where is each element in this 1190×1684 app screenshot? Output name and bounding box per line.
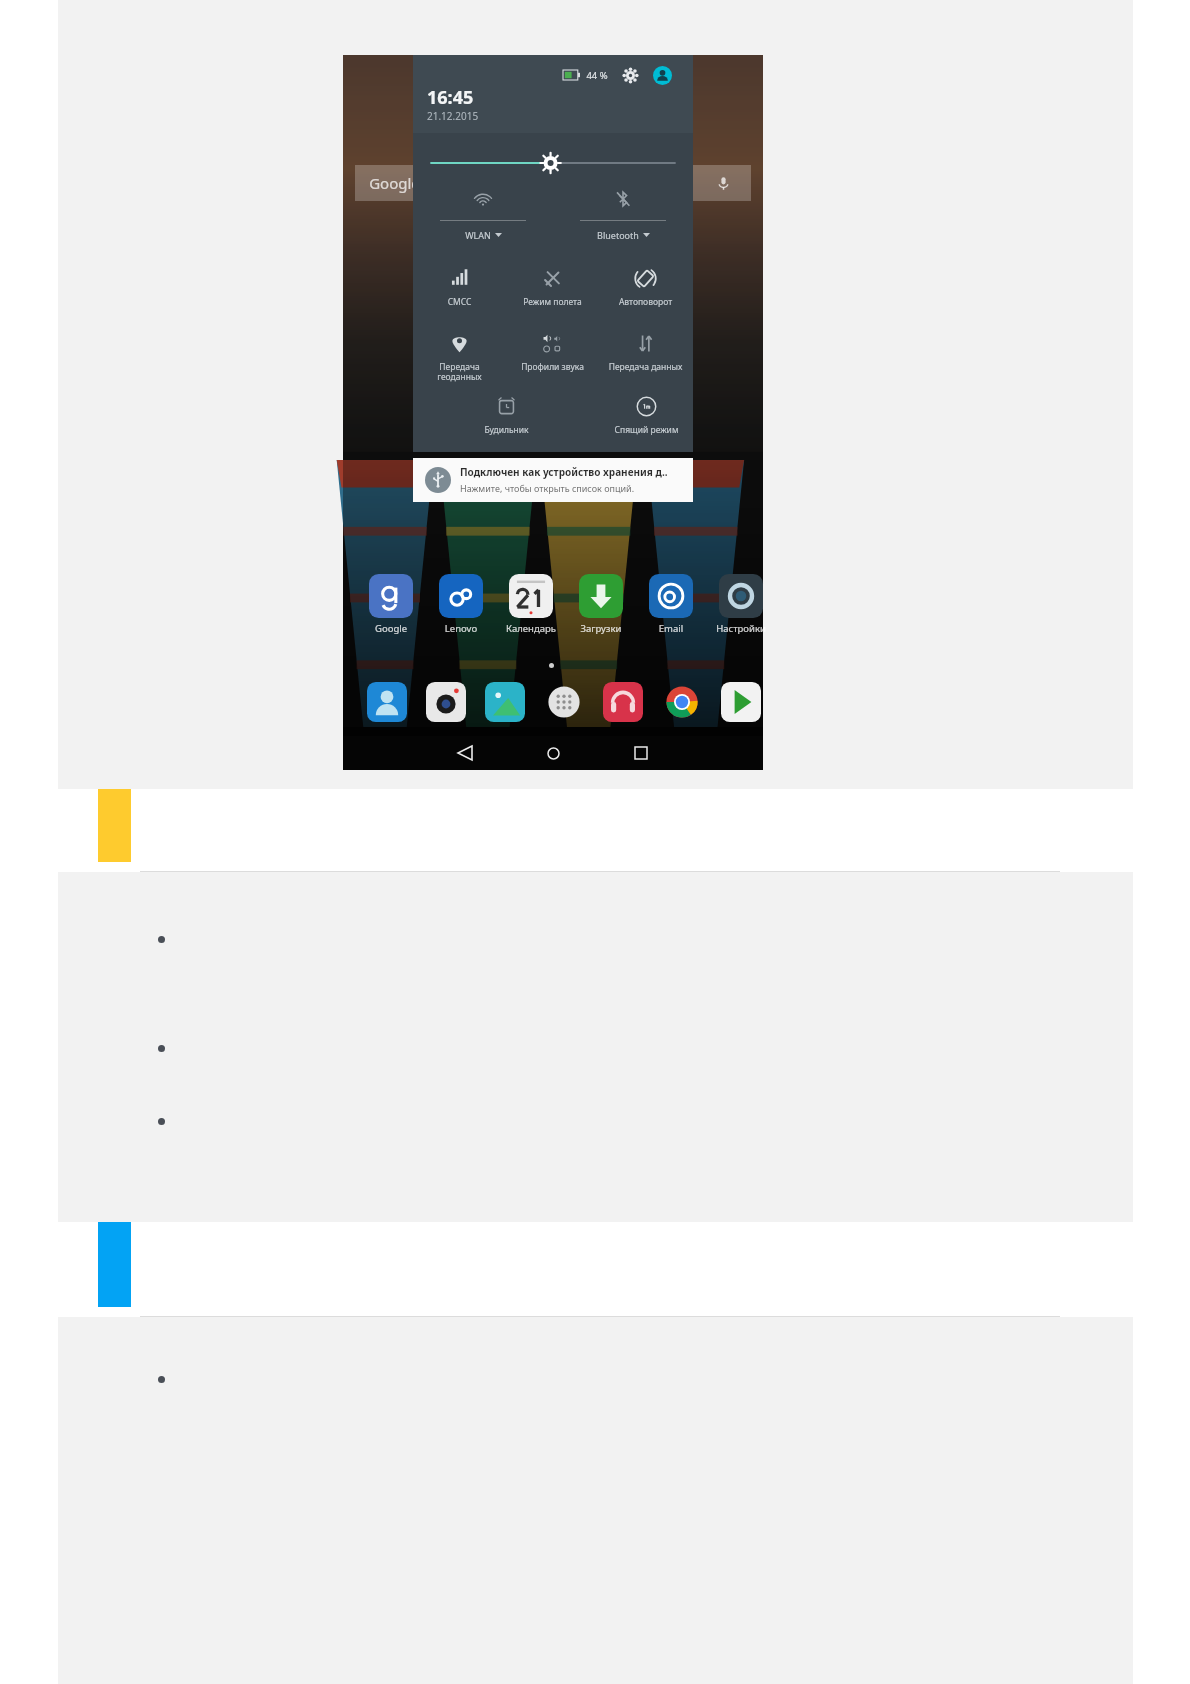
staticText: Передача геоданных <box>413 361 506 383</box>
button[interactable]: Back <box>435 736 495 770</box>
button[interactable]: Music <box>595 674 651 730</box>
button[interactable]: Home <box>523 736 583 770</box>
button[interactable]: Recents <box>611 736 671 770</box>
button[interactable]: Автоповорот <box>599 265 692 327</box>
staticText: Профили звука <box>506 361 599 373</box>
staticText: Календарь <box>496 622 566 635</box>
staticText: Google <box>369 173 420 193</box>
staticText: Режим полета <box>506 296 599 308</box>
button[interactable]: Передача геоданных <box>413 330 506 392</box>
button[interactable]: Contacts <box>359 674 415 730</box>
button[interactable]: Профили звука <box>506 330 599 392</box>
staticText: Подключен как устройство хранения д.. <box>460 465 668 479</box>
button[interactable]: Календарь <box>496 574 566 646</box>
button[interactable]: WLAN <box>413 183 553 245</box>
staticText: Нажмите, чтобы открыть список опций. <box>460 482 635 494</box>
button[interactable]: Будильник <box>460 393 553 449</box>
button[interactable]: Chrome <box>654 674 710 730</box>
staticText: 16:45 <box>427 85 474 110</box>
button[interactable]: Настройки <box>706 574 776 646</box>
staticText: Bluetooth <box>597 229 639 241</box>
button[interactable]: All apps <box>536 674 592 730</box>
staticText: Загрузки <box>566 622 636 635</box>
staticText: 44 % <box>586 69 608 82</box>
button[interactable]: Email <box>636 574 706 646</box>
button[interactable]: Settings <box>619 64 641 86</box>
button[interactable]: Подключен как устройство хранения д.. <box>413 458 693 502</box>
staticText: Google <box>356 622 426 635</box>
staticText: Передача данных <box>599 361 692 373</box>
button[interactable]: Спящий режим <box>600 393 693 449</box>
button[interactable]: Lenovo <box>426 574 496 646</box>
staticText: CMCC <box>413 296 506 308</box>
staticText: WLAN <box>465 229 491 241</box>
button[interactable]: Режим полета <box>506 265 599 327</box>
staticText: Автоповорот <box>599 296 692 308</box>
button[interactable]: Bluetooth <box>553 183 693 245</box>
button[interactable]: Gallery <box>477 674 533 730</box>
staticText: 21.12.2015 <box>427 109 479 123</box>
button[interactable]: Передача данных <box>599 330 692 392</box>
staticText: Настройки <box>706 622 776 635</box>
staticText: Спящий режим <box>600 424 693 436</box>
button[interactable]: Play Store <box>713 674 769 730</box>
button[interactable]: CMCC <box>413 265 506 327</box>
button[interactable]: Camera <box>418 674 474 730</box>
button[interactable]: Google <box>355 165 751 201</box>
button[interactable]: User profile <box>650 63 674 87</box>
button[interactable]: Google <box>356 574 426 646</box>
button[interactable]: Загрузки <box>566 574 636 646</box>
staticText: Lenovo <box>426 622 496 635</box>
staticText: Email <box>636 622 706 635</box>
button[interactable] <box>413 143 693 183</box>
staticText: Будильник <box>460 424 553 436</box>
